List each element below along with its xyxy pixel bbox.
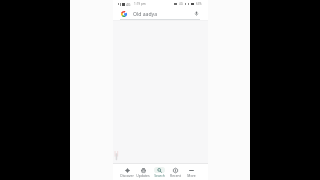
staticText: 1:19 pm bbox=[134, 2, 146, 6]
button[interactable]: More bbox=[183, 164, 199, 180]
staticText: 4G bbox=[126, 2, 131, 6]
button[interactable]: Old aadya bbox=[119, 7, 201, 19]
button[interactable]: Search bbox=[151, 164, 167, 180]
staticText: Discover bbox=[120, 173, 134, 178]
staticText: 63% bbox=[196, 2, 202, 6]
staticText: Search bbox=[154, 173, 165, 178]
staticText: More bbox=[187, 173, 196, 178]
button[interactable]: Discover bbox=[119, 164, 135, 180]
staticText: 4G bbox=[179, 2, 183, 6]
button[interactable]: Recent bbox=[167, 164, 183, 180]
staticText: Updates bbox=[136, 173, 150, 178]
staticText: Recent bbox=[170, 173, 181, 178]
button[interactable]: Voice search bbox=[194, 11, 199, 16]
button[interactable]: Updates bbox=[135, 164, 151, 180]
staticText: Old aadya bbox=[133, 11, 158, 18]
